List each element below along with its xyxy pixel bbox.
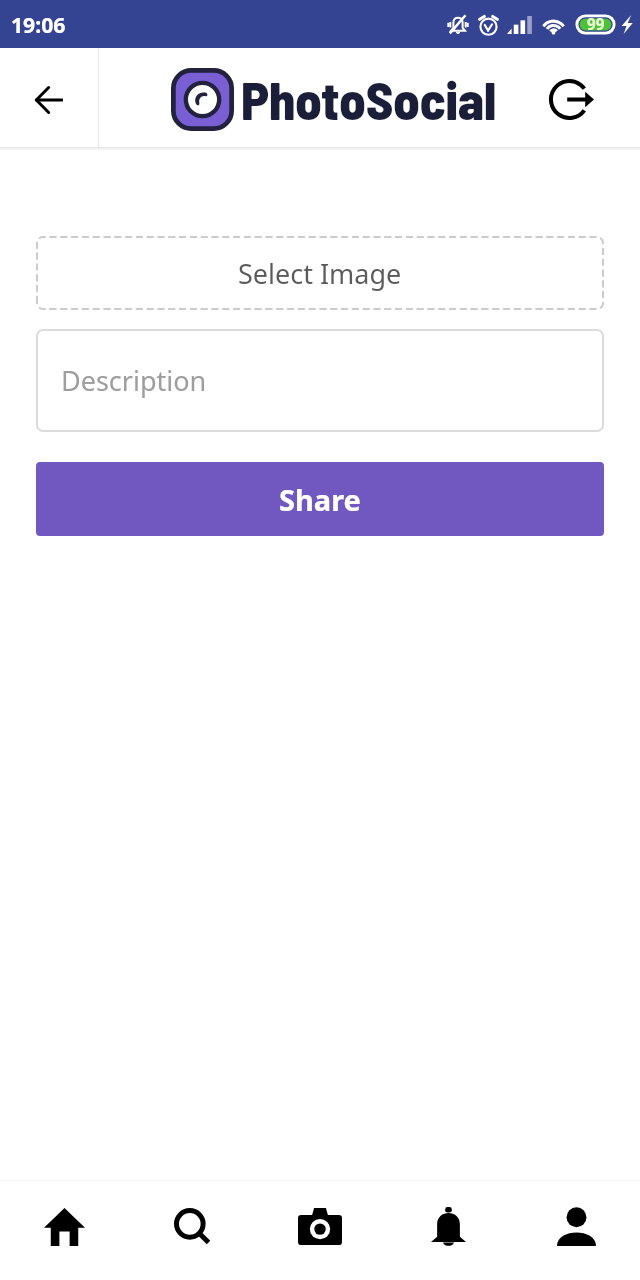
button[interactable]: Select Image [36,236,604,310]
button[interactable]: Description [36,329,604,432]
button[interactable]: Share [36,462,604,536]
button[interactable]: Home [0,1181,128,1280]
button[interactable]: Back [0,48,98,151]
button[interactable]: Logout [526,48,620,151]
button[interactable]: Notifications [384,1181,512,1280]
staticText: Share [279,480,361,519]
staticText: Select Image [238,255,402,292]
button[interactable]: Profile [512,1181,640,1280]
staticText: PhotoSocial [241,68,497,131]
button[interactable]: Camera [256,1181,384,1280]
button[interactable]: Search [128,1181,256,1280]
staticText: 99 [587,14,605,35]
staticText: Description [61,362,207,399]
staticText: 19:06 [11,10,66,39]
